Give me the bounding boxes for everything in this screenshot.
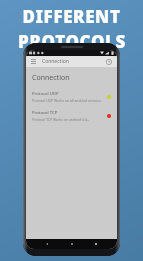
- staticText: Protocol TCP: [32, 110, 58, 116]
- staticText: Protocol UDP: [32, 91, 59, 97]
- button[interactable]: Recent apps: [92, 240, 100, 248]
- button[interactable]: Protocol TCP: [26, 109, 117, 123]
- staticText: PROTOCOLS: [18, 30, 126, 53]
- button[interactable]: Back: [43, 240, 51, 248]
- button[interactable]: Protocol UDP: [26, 90, 117, 104]
- button[interactable]: Open navigation menu: [30, 58, 37, 65]
- button[interactable]: Settings: [105, 58, 113, 66]
- button[interactable]: Open navigation menu: [26, 56, 117, 67]
- staticText: Protocol TCP Works on android 4.4+: [32, 117, 89, 122]
- staticText: Connection: [42, 58, 69, 65]
- button[interactable]: Home: [68, 240, 76, 248]
- staticText: DIFFERENT: [22, 5, 121, 28]
- staticText: PROTOCOLS: [18, 30, 126, 53]
- staticText: Protocol UDP Works on all android versio…: [32, 98, 102, 103]
- staticText: Connection: [32, 73, 70, 83]
- staticText: DIFFERENT: [22, 5, 121, 28]
